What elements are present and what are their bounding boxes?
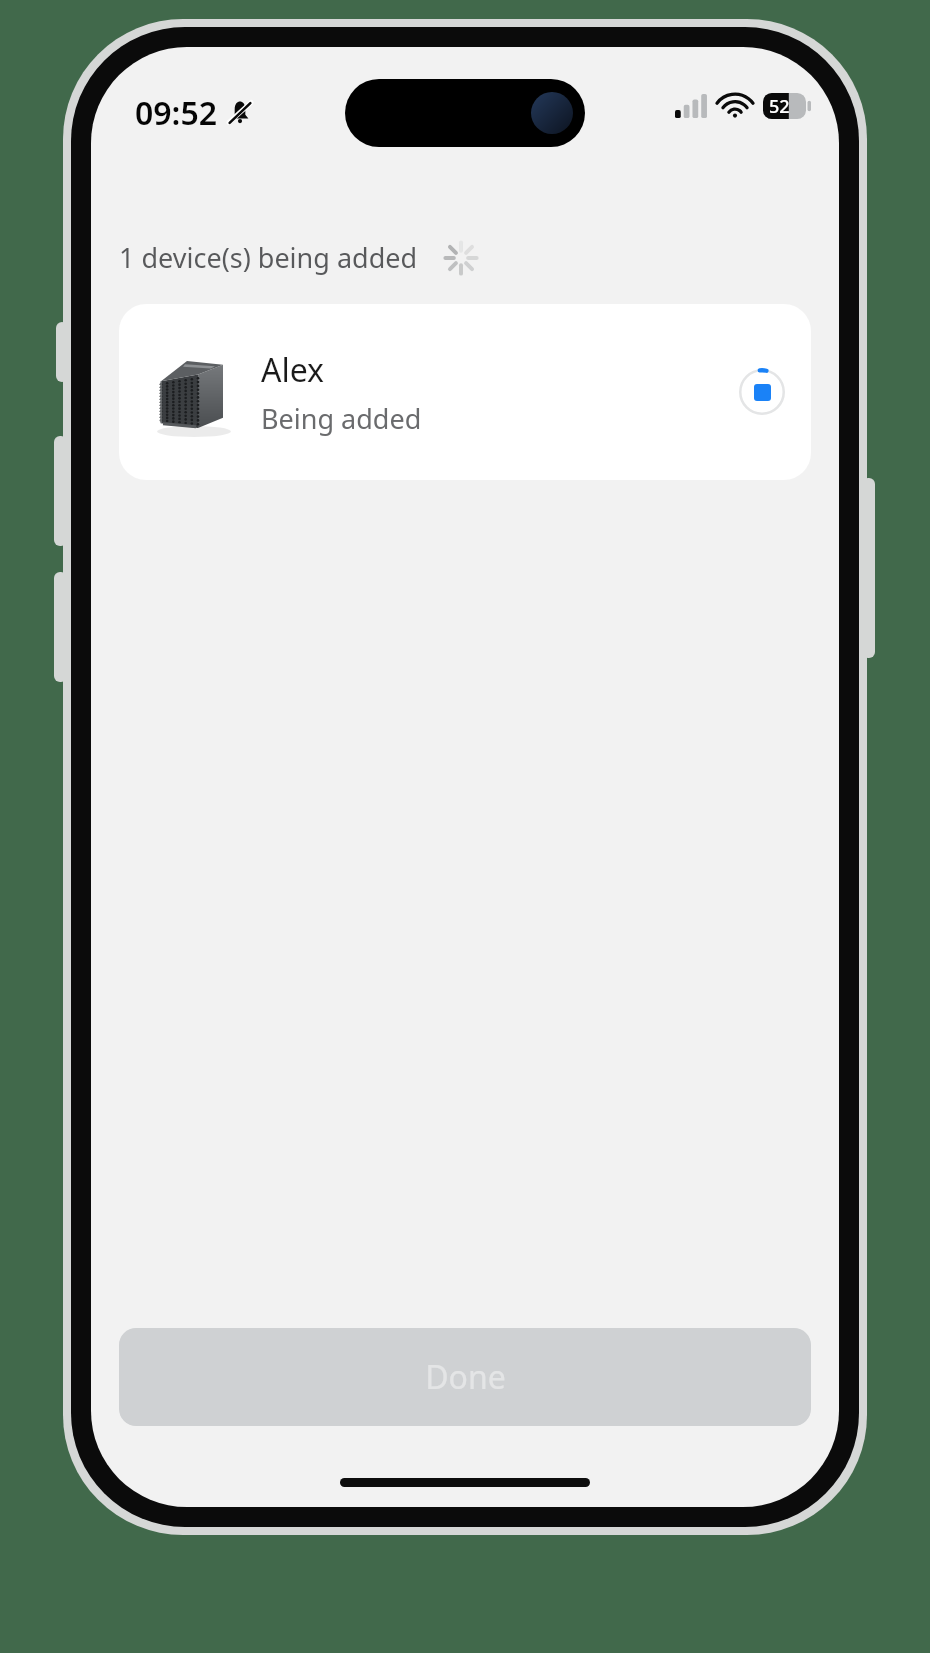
staticText: 1 device(s) being added [119, 239, 418, 276]
staticText: 52 [769, 94, 790, 119]
staticText: 09:52 [135, 91, 218, 135]
staticText: Alex [261, 348, 325, 392]
staticText: Done [425, 1355, 506, 1399]
button[interactable]: Cancel adding device [739, 369, 785, 415]
button[interactable]: Alex [119, 304, 811, 480]
staticText: Being added [261, 400, 422, 437]
